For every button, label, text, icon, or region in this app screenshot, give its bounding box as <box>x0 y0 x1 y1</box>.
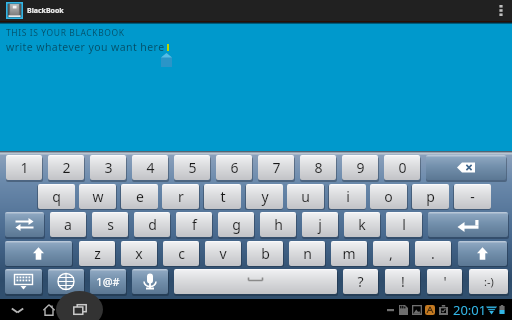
staticText: t <box>220 187 226 206</box>
button[interactable]: m <box>331 241 367 266</box>
button[interactable]: y <box>246 184 283 209</box>
button[interactable]: 5 <box>174 155 210 180</box>
button[interactable]: l <box>386 212 422 237</box>
button[interactable]: p <box>412 184 449 209</box>
button[interactable]: q <box>38 184 75 209</box>
button[interactable]: z <box>79 241 115 266</box>
staticText: k <box>358 215 366 234</box>
button[interactable]: ' <box>427 269 462 294</box>
button[interactable]: :-) <box>469 269 508 294</box>
staticText: j <box>318 215 322 234</box>
button[interactable]: k <box>344 212 380 237</box>
staticText: w <box>92 187 104 206</box>
button[interactable]: globe <box>48 269 84 294</box>
button[interactable]: Home <box>37 299 60 320</box>
staticText: 1 <box>20 158 29 177</box>
button[interactable]: 3 <box>90 155 126 180</box>
button[interactable]: 6 <box>216 155 252 180</box>
button[interactable]: e <box>121 184 158 209</box>
button[interactable]: h <box>260 212 296 237</box>
button[interactable]: ! <box>385 269 420 294</box>
button[interactable]: 9 <box>342 155 378 180</box>
staticText: n <box>303 244 312 263</box>
staticText: u <box>301 187 310 206</box>
staticText: z <box>94 244 101 263</box>
staticText: g <box>232 215 241 234</box>
staticText: b <box>261 244 270 263</box>
button[interactable]: Back <box>6 299 28 320</box>
button[interactable]: 0 <box>384 155 420 180</box>
staticText: THIS IS YOUR BLACKBOOK <box>6 27 125 39</box>
button[interactable]: j <box>302 212 338 237</box>
staticText: ? <box>357 272 364 291</box>
staticText: :-) <box>484 274 494 289</box>
staticText: y <box>261 187 269 206</box>
button[interactable]: a <box>50 212 86 237</box>
button[interactable]: f <box>176 212 212 237</box>
button[interactable]: 4 <box>132 155 168 180</box>
staticText: 6 <box>230 158 239 177</box>
button[interactable]: shift <box>5 241 72 266</box>
staticText: 7 <box>272 158 281 177</box>
button[interactable]: r <box>162 184 199 209</box>
staticText: ' <box>443 272 447 291</box>
button[interactable]: , <box>373 241 409 266</box>
button[interactable]: ? <box>343 269 378 294</box>
button[interactable]: backspace <box>426 155 506 180</box>
button[interactable]: 1@# <box>90 269 126 294</box>
staticText: e <box>136 187 144 206</box>
button[interactable]: c <box>163 241 199 266</box>
staticText: 9 <box>356 158 365 177</box>
staticText: , <box>389 244 393 263</box>
button[interactable]: shift <box>458 241 507 266</box>
staticText: c <box>178 244 185 263</box>
button[interactable]: i <box>329 184 366 209</box>
staticText: l <box>402 215 406 234</box>
staticText: 4 <box>146 158 155 177</box>
button[interactable]: More options <box>490 0 512 21</box>
staticText: 5 <box>188 158 197 177</box>
staticText: 0 <box>398 158 407 177</box>
button[interactable]: v <box>205 241 241 266</box>
staticText: x <box>135 244 143 263</box>
staticText: m <box>342 244 356 263</box>
button[interactable]: 8 <box>300 155 336 180</box>
staticText: 8 <box>314 158 323 177</box>
staticText: i <box>346 187 350 206</box>
button[interactable]: g <box>218 212 254 237</box>
button[interactable]: hidekb <box>5 269 42 294</box>
staticText: write whatever you want here <box>6 40 165 54</box>
button[interactable]: w <box>79 184 116 209</box>
staticText: 20:01 <box>453 301 487 319</box>
staticText: s <box>107 215 114 234</box>
button[interactable]: x <box>121 241 157 266</box>
staticText: o <box>384 187 393 206</box>
button[interactable]: d <box>134 212 170 237</box>
staticText: 1@# <box>96 274 120 289</box>
staticText: 3 <box>104 158 113 177</box>
button[interactable]: 1 <box>6 155 42 180</box>
button[interactable]: - <box>454 184 491 209</box>
staticText: p <box>426 187 435 206</box>
button[interactable]: n <box>289 241 325 266</box>
staticText: . <box>431 244 435 263</box>
staticText: a <box>64 215 72 234</box>
button[interactable]: Recent apps <box>68 299 92 320</box>
button[interactable]: 2 <box>48 155 84 180</box>
button[interactable]: mic <box>132 269 168 294</box>
staticText: 2 <box>62 158 71 177</box>
staticText: q <box>52 187 61 206</box>
button[interactable]: tab <box>5 212 44 237</box>
button[interactable]: space <box>174 269 337 294</box>
button[interactable]: s <box>92 212 128 237</box>
button[interactable]: t <box>204 184 241 209</box>
staticText: - <box>470 187 475 206</box>
button[interactable]: o <box>370 184 407 209</box>
button[interactable]: . <box>415 241 451 266</box>
button[interactable]: u <box>287 184 324 209</box>
button[interactable]: b <box>247 241 283 266</box>
staticText: f <box>192 215 197 234</box>
button[interactable]: enter <box>428 212 508 237</box>
button[interactable]: 7 <box>258 155 294 180</box>
staticText: ! <box>401 272 405 291</box>
